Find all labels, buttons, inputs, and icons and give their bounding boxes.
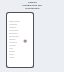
staticText: Maintenance bbox=[25, 7, 40, 10]
button[interactable]: Update bbox=[7, 37, 33, 40]
staticText: Bluetooth bbox=[9, 32, 18, 34]
staticText: Configuration and bbox=[22, 4, 42, 7]
button[interactable]: Diagnostics bbox=[7, 34, 33, 37]
staticText: Reset bbox=[9, 53, 14, 55]
staticText: Security bbox=[9, 44, 16, 46]
button[interactable]: Backup bbox=[7, 49, 33, 52]
staticText: Firmware bbox=[9, 23, 17, 25]
staticText: Schedule bbox=[9, 41, 17, 43]
button[interactable]: Logs bbox=[7, 46, 33, 49]
staticText: Remote bbox=[28, 1, 37, 4]
staticText: Update bbox=[9, 38, 16, 40]
staticText: Network bbox=[9, 26, 17, 28]
staticText: Wi-Fi setup bbox=[9, 29, 19, 31]
button[interactable]: Bluetooth bbox=[7, 31, 33, 34]
button[interactable]: Device name bbox=[7, 19, 33, 22]
staticText: Device name bbox=[9, 20, 20, 22]
staticText: Backup bbox=[9, 50, 16, 52]
button[interactable]: Reset bbox=[7, 52, 33, 55]
button[interactable]: Schedule bbox=[7, 40, 33, 43]
staticText: Diagnostics bbox=[9, 35, 19, 37]
staticText: Logs bbox=[9, 47, 13, 49]
button[interactable]: Wi-Fi setup bbox=[7, 28, 33, 31]
staticText: About bbox=[9, 56, 15, 58]
button[interactable]: Network bbox=[7, 25, 33, 28]
button[interactable]: Security bbox=[7, 43, 33, 46]
button[interactable]: Firmware bbox=[7, 22, 33, 25]
button[interactable]: About bbox=[7, 55, 33, 58]
